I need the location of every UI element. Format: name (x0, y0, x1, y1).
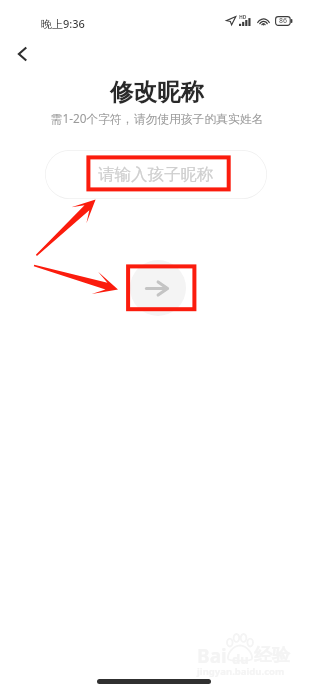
button[interactable]: 请输入孩子昵称 (45, 150, 267, 199)
staticText: 86 (279, 16, 288, 26)
staticText: HD (239, 14, 247, 21)
staticText: 请输入孩子昵称 (98, 164, 214, 185)
staticText: 修改昵称 (0, 77, 314, 107)
staticText: 需1-20个字符，请勿使用孩子的真实姓名 (0, 110, 314, 126)
button[interactable]: Confirm (130, 260, 186, 316)
staticText: du (232, 650, 249, 668)
staticText: 晚上9:36 (41, 16, 85, 31)
staticText: 经验 (254, 644, 290, 667)
staticText: jingyan.baidu.com (197, 665, 285, 678)
staticText: Bai (197, 643, 227, 669)
button[interactable]: Back (2, 34, 40, 72)
